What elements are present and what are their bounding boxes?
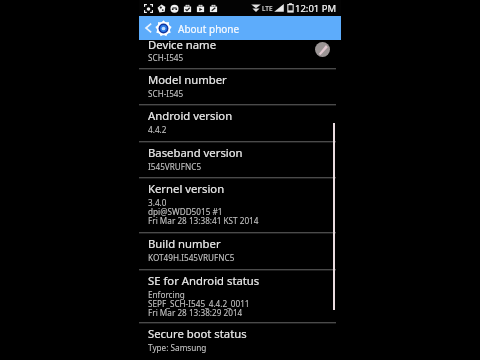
staticText: Fri Mar 28 13:38:41 KST 2014 — [148, 215, 259, 226]
staticText: Model number — [148, 72, 227, 87]
button[interactable]: Navigate up — [139, 16, 341, 40]
staticText: I545VRUFNC5 — [148, 161, 202, 172]
staticText: SEPF_SCH-I545_4.4.2_0011 — [148, 298, 250, 309]
button[interactable]: Android version — [139, 105, 341, 141]
button[interactable]: Model number — [139, 69, 341, 104]
button[interactable]: Kernel version — [139, 178, 341, 232]
staticText: Android version — [148, 108, 233, 123]
staticText: SE for Android status — [148, 273, 260, 288]
staticText: Type: Samsung — [148, 342, 207, 353]
button[interactable]: SE for Android status — [139, 270, 341, 322]
staticText: Fri Mar 28 13:38:29 2014 — [148, 307, 243, 318]
staticText: Device name — [148, 37, 217, 52]
button[interactable]: Device name — [139, 33, 341, 68]
staticText: KOT49H.I545VRUFNC5 — [148, 252, 235, 263]
staticText: 3.4.0 — [148, 197, 167, 208]
staticText: 12:01 PM — [295, 2, 337, 15]
button[interactable]: Edit device name — [315, 42, 330, 57]
staticText: Baseband version — [148, 145, 243, 160]
staticText: SCH-I545 — [148, 88, 184, 99]
staticText: Secure boot status — [148, 326, 247, 341]
staticText: About phone — [178, 22, 240, 36]
button[interactable]: Navigate up — [141, 16, 155, 40]
button[interactable]: Secure boot status — [139, 323, 341, 360]
staticText: LTE — [262, 4, 273, 13]
staticText: Kernel version — [148, 181, 225, 196]
button[interactable]: Build number — [139, 233, 341, 269]
staticText: SCH-I545 — [148, 52, 184, 63]
staticText: 4.4.2 — [148, 124, 167, 135]
staticText: dpi@SWDD5015 #1 — [148, 206, 223, 217]
button[interactable]: Baseband version — [139, 142, 341, 177]
staticText: Enforcing — [148, 289, 185, 300]
staticText: Build number — [148, 236, 221, 251]
